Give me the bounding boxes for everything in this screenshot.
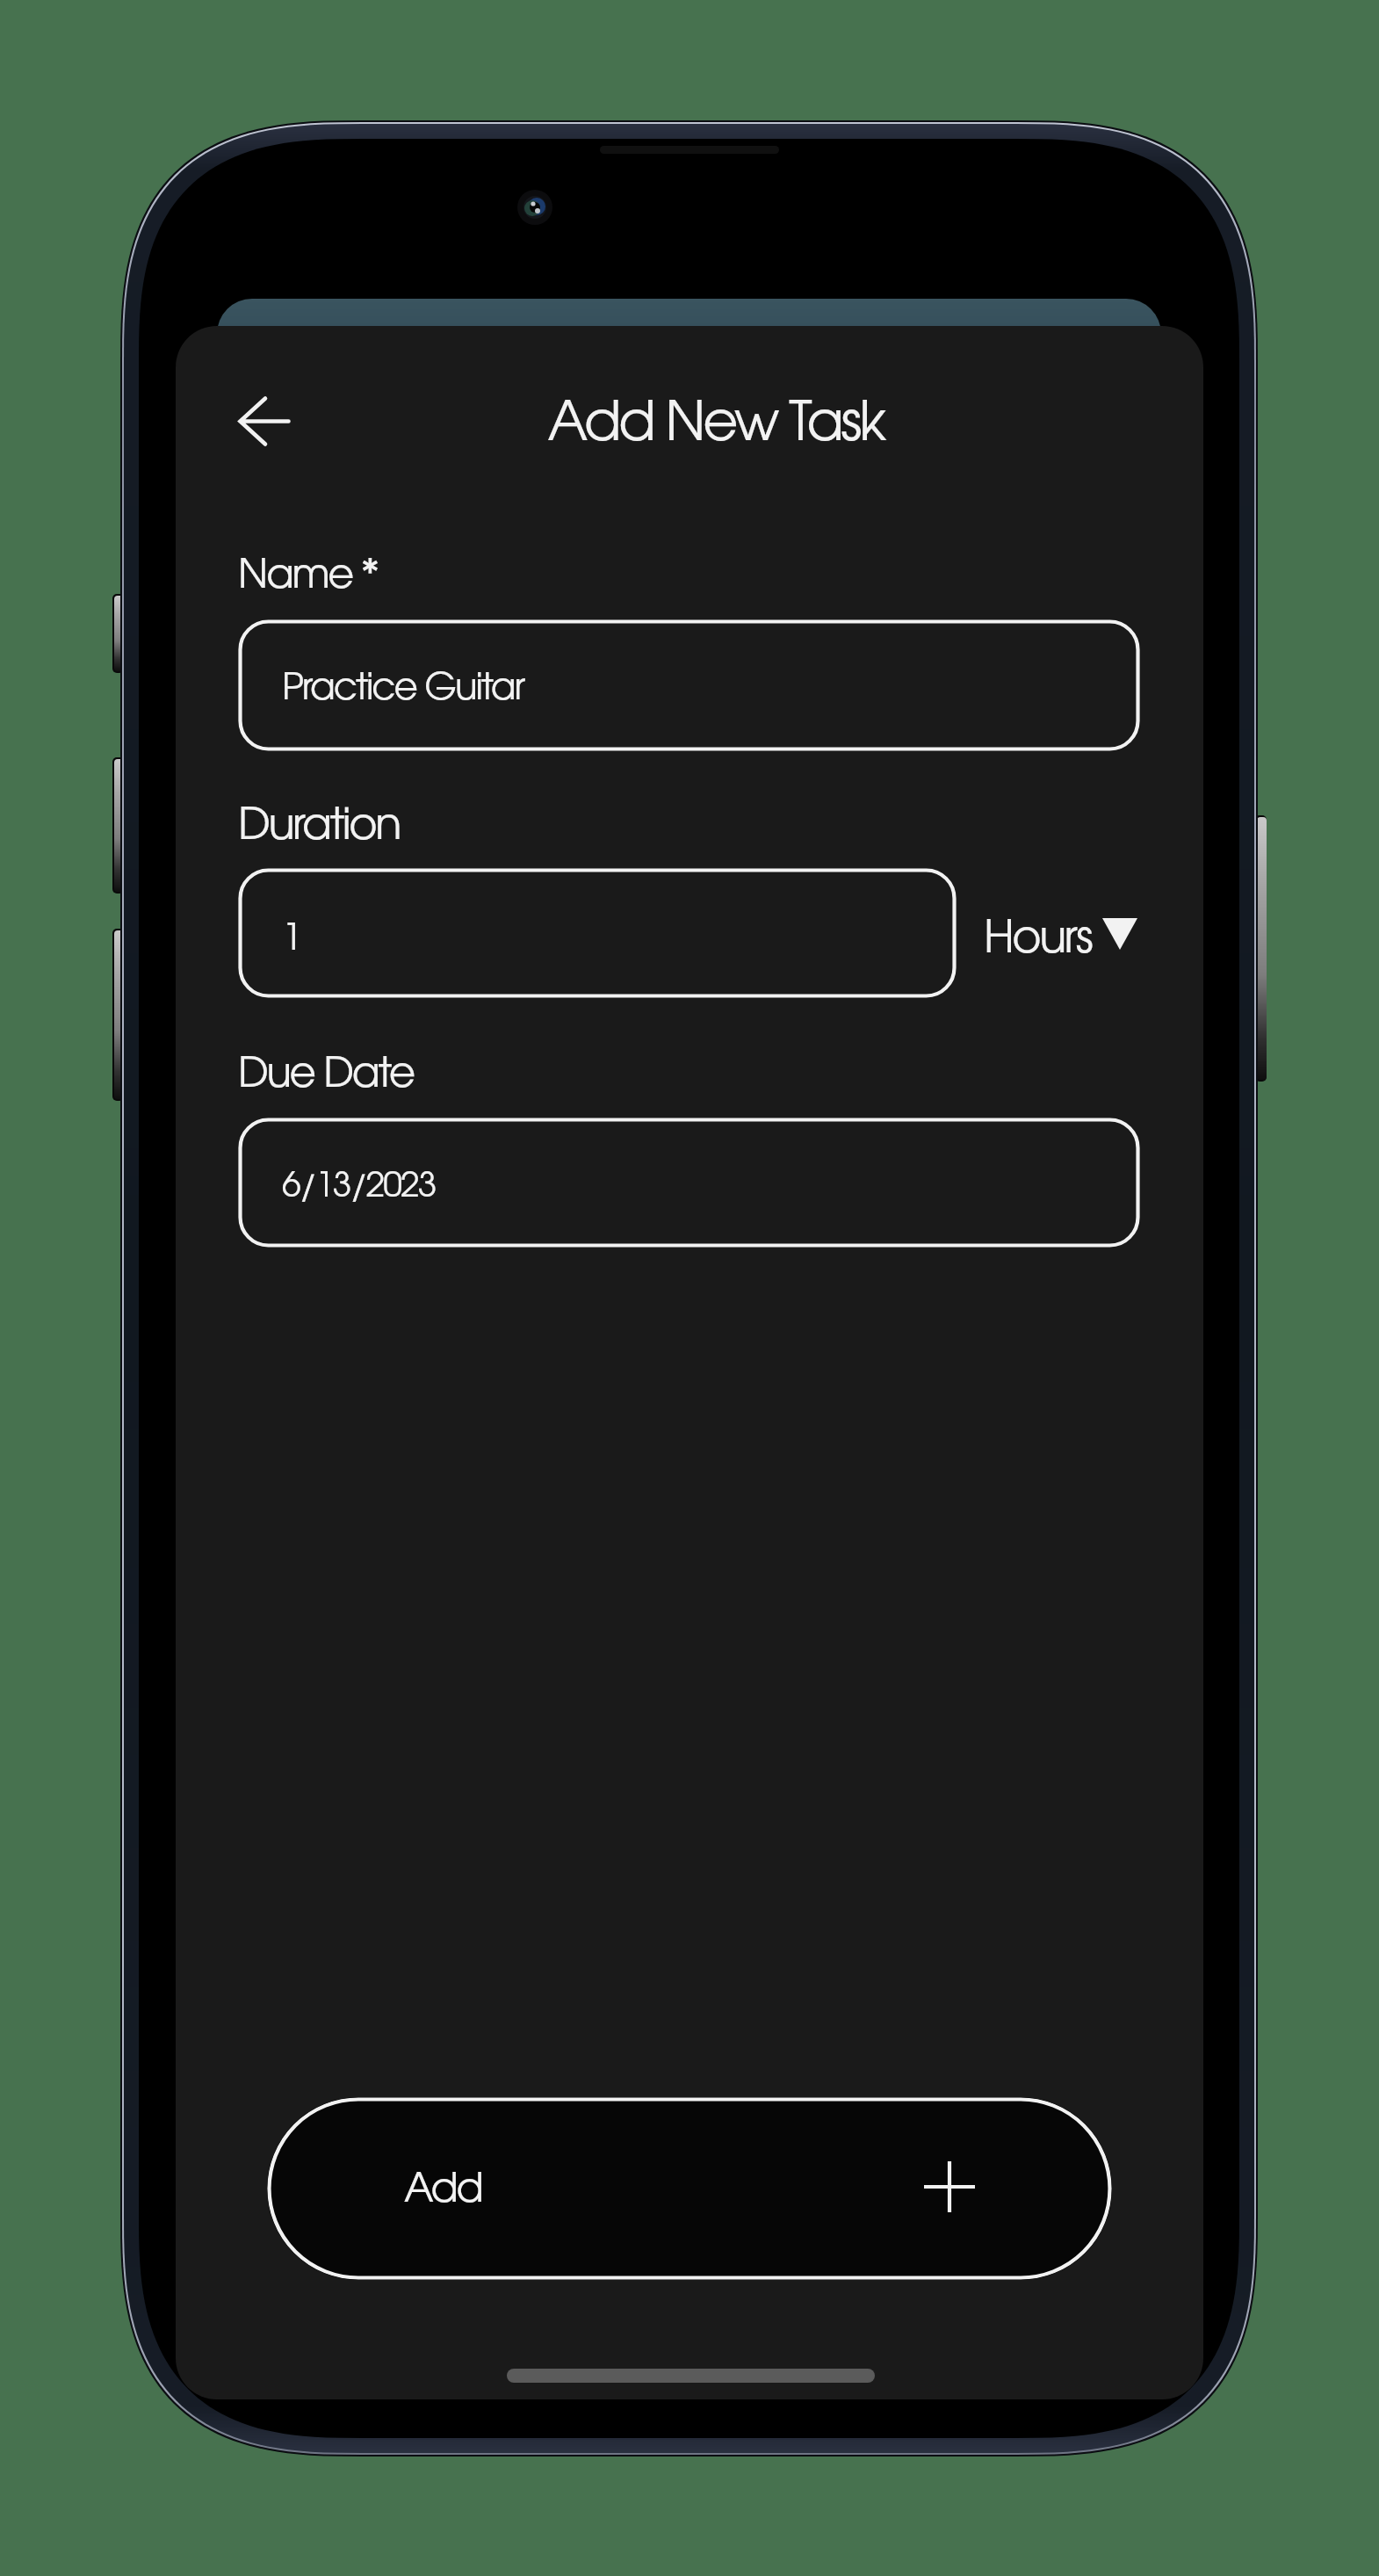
staticText: Name * (238, 558, 378, 596)
staticText: Hours (984, 919, 1092, 960)
staticText: Add New Task (321, 400, 1111, 476)
staticText: Add (404, 2172, 482, 2209)
button[interactable]: Back (212, 368, 317, 474)
staticText: 1 (282, 923, 301, 957)
staticText: Due Date (238, 1056, 414, 1095)
staticText: Duration (238, 807, 400, 847)
button[interactable] (267, 2097, 1112, 2280)
staticText: Practice Guitar (282, 672, 524, 706)
button[interactable] (238, 619, 1140, 751)
button[interactable] (238, 868, 957, 998)
button[interactable] (238, 1118, 1140, 1248)
staticText: 6/13/2023 (282, 1171, 436, 1203)
